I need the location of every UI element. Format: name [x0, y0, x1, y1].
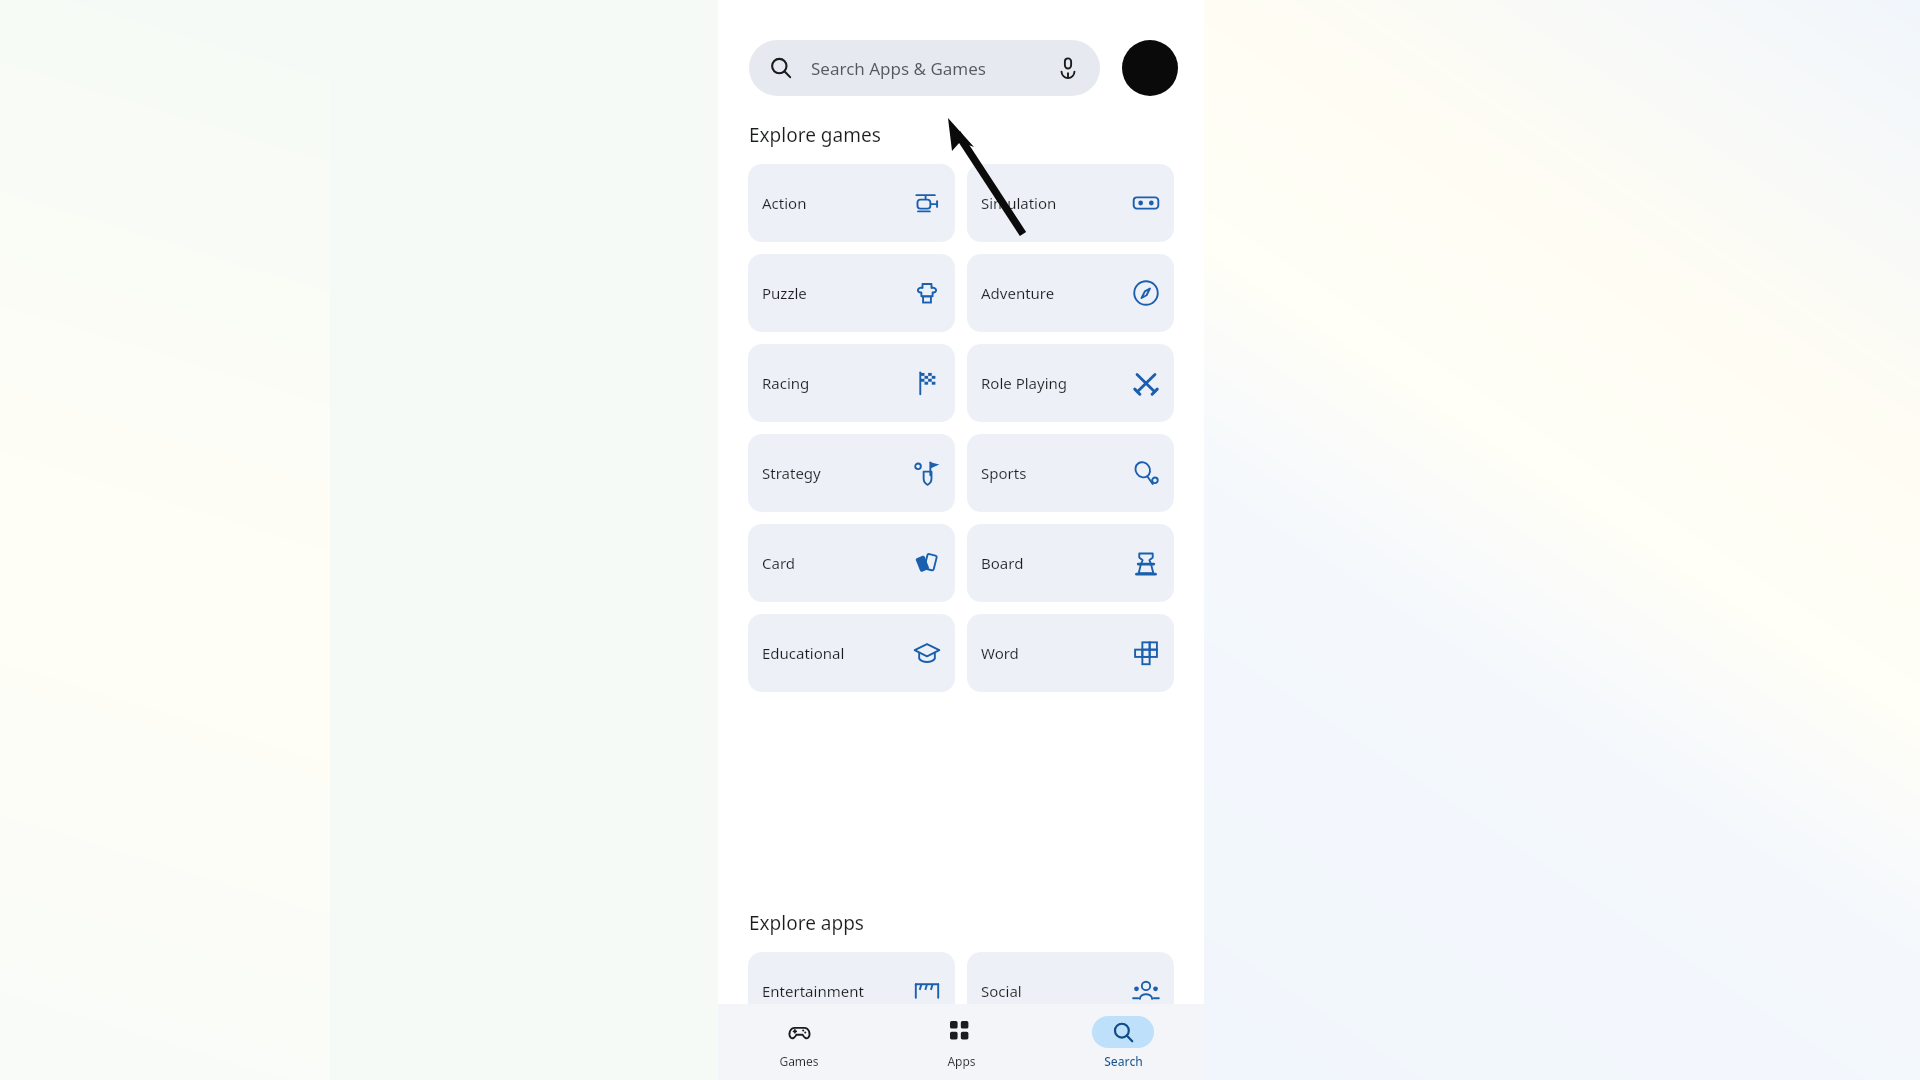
staticText: Explore games — [749, 122, 881, 148]
button[interactable]: Educational — [748, 614, 955, 692]
button[interactable]: Apps — [880, 1004, 1042, 1080]
staticText: Entertainment — [762, 981, 913, 1001]
button[interactable]: Sports — [967, 434, 1174, 512]
button[interactable]: Strategy — [748, 434, 955, 512]
button[interactable]: Entertainment — [748, 952, 955, 1030]
button[interactable]: Simulation — [967, 164, 1174, 242]
button[interactable]: Racing — [748, 344, 955, 422]
staticText: Explore apps — [749, 910, 864, 936]
staticText: Board — [981, 553, 1132, 573]
staticText: Role Playing — [981, 373, 1132, 393]
staticText: Games — [779, 1053, 819, 1069]
button[interactable]: Role Playing — [967, 344, 1174, 422]
button[interactable]: Account — [1122, 40, 1178, 96]
button[interactable]: Puzzle — [748, 254, 955, 332]
staticText: Word — [981, 643, 1132, 663]
staticText: Apps — [947, 1053, 976, 1069]
staticText: Educational — [762, 643, 913, 663]
staticText: Search Apps & Games — [811, 57, 986, 80]
staticText: Social — [981, 981, 1132, 1001]
button[interactable]: Search Apps & Games — [749, 40, 1100, 96]
button[interactable]: Adventure — [967, 254, 1174, 332]
button[interactable]: Action — [748, 164, 955, 242]
staticText: Puzzle — [762, 283, 913, 303]
staticText: Search — [1104, 1053, 1143, 1069]
button[interactable]: Games — [718, 1004, 880, 1080]
button[interactable]: Card — [748, 524, 955, 602]
staticText: Card — [762, 553, 913, 573]
staticText: Action — [762, 193, 913, 213]
button[interactable]: Search — [1042, 1004, 1204, 1080]
staticText: Sports — [981, 463, 1132, 483]
staticText: Adventure — [981, 283, 1132, 303]
button[interactable]: Social — [967, 952, 1174, 1030]
button[interactable]: Word — [967, 614, 1174, 692]
button[interactable]: Board — [967, 524, 1174, 602]
staticText: Simulation — [981, 193, 1132, 213]
staticText: Racing — [762, 373, 913, 393]
staticText: Strategy — [762, 463, 913, 483]
